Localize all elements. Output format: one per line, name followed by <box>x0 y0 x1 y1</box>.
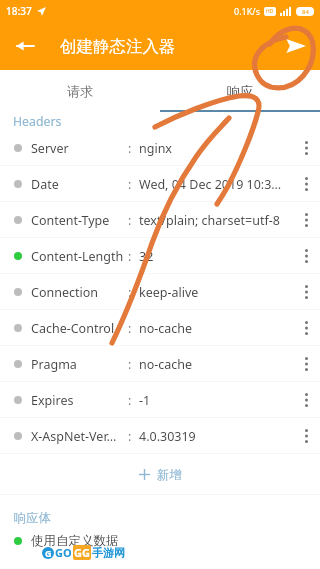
staticText: 使用自定义数据 <box>31 533 119 549</box>
staticText: : <box>128 176 132 193</box>
staticText: : <box>128 392 132 409</box>
staticText: 手游网 <box>92 546 125 560</box>
staticText: Connection <box>31 284 98 301</box>
button[interactable]: Pragma <box>0 346 320 382</box>
staticText: Server <box>31 140 69 157</box>
button[interactable]: Content-Length <box>0 238 320 274</box>
staticText: : <box>128 140 132 157</box>
button[interactable]: More options <box>292 274 320 310</box>
staticText: 32 <box>139 248 154 265</box>
staticText: Cache-Control <box>31 320 115 337</box>
button[interactable]: 使用自定义数据 <box>0 525 320 557</box>
staticText: no-cache <box>139 320 193 337</box>
button[interactable]: X-AspNet-Ver… <box>0 418 320 454</box>
button[interactable]: More options <box>292 346 320 382</box>
button[interactable]: Back <box>0 22 48 70</box>
staticText: : <box>128 428 132 445</box>
staticText: 新增 <box>157 467 182 483</box>
button[interactable]: More options <box>292 382 320 418</box>
staticText: keep-alive <box>139 284 199 301</box>
staticText: G <box>45 547 52 559</box>
staticText: Content-Type <box>31 212 110 229</box>
staticText: : <box>128 356 132 373</box>
button[interactable]: 响应 <box>160 70 320 112</box>
button[interactable]: 请求 <box>0 70 160 112</box>
staticText: 0.1K/s <box>234 5 260 17</box>
button[interactable]: More options <box>292 202 320 238</box>
staticText: Pragma <box>31 356 77 373</box>
button[interactable]: Server <box>0 130 320 166</box>
staticText: HD <box>266 8 274 15</box>
staticText: Content-Length <box>31 248 124 265</box>
button[interactable]: Cache-Control <box>0 310 320 346</box>
staticText: Wed, 04 Dec 2019 10:3… <box>139 176 282 193</box>
button[interactable]: Content-Type <box>0 202 320 238</box>
staticText: Expires <box>31 392 74 409</box>
staticText: GG <box>74 545 90 560</box>
staticText: text/plain; charset=utf-8 <box>139 212 280 229</box>
button[interactable]: More options <box>292 238 320 274</box>
staticText: : <box>128 248 132 265</box>
staticText: 创建静态注入器 <box>60 36 176 57</box>
button[interactable]: Date <box>0 166 320 202</box>
button[interactable]: Send <box>272 22 320 70</box>
staticText: Headers <box>13 113 62 130</box>
staticText: X-AspNet-Ver… <box>31 428 117 445</box>
button[interactable]: More options <box>292 418 320 454</box>
staticText: : <box>128 212 132 229</box>
staticText: 84 <box>302 8 309 16</box>
staticText: Date <box>31 176 59 193</box>
staticText: 响应体 <box>14 510 51 525</box>
button[interactable]: Connection <box>0 274 320 310</box>
staticText: 请求 <box>67 83 93 99</box>
button[interactable]: More options <box>292 130 320 166</box>
button[interactable]: 新增 <box>0 454 320 495</box>
staticText: nginx <box>139 140 172 157</box>
button[interactable]: Expires <box>0 382 320 418</box>
staticText: : <box>128 320 132 337</box>
button[interactable]: More options <box>292 166 320 202</box>
staticText: 4.0.30319 <box>139 428 196 445</box>
button[interactable]: More options <box>292 310 320 346</box>
staticText: : <box>128 284 132 301</box>
staticText: GO <box>55 545 72 560</box>
staticText: no-cache <box>139 356 193 373</box>
staticText: 18:37 <box>6 4 32 18</box>
staticText: -1 <box>139 392 151 409</box>
staticText: 响应 <box>227 83 253 99</box>
